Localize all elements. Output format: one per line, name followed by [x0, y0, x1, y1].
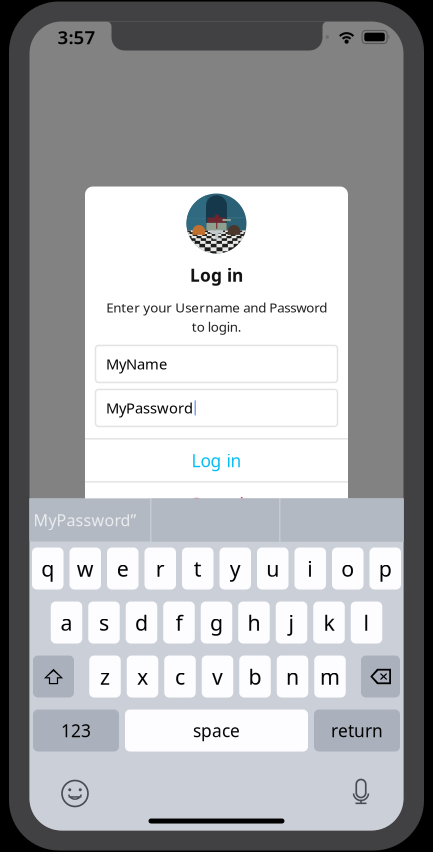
- staticText: x: [137, 662, 148, 691]
- staticText: o: [341, 554, 354, 583]
- staticText: return: [331, 719, 383, 742]
- staticText: Cancel: [189, 492, 243, 515]
- button[interactable]: c: [164, 655, 196, 697]
- button[interactable]: q: [32, 547, 63, 589]
- button[interactable]: r: [144, 547, 176, 589]
- button[interactable]: space: [125, 709, 308, 751]
- staticText: 3:57: [57, 25, 95, 49]
- staticText: y: [230, 554, 241, 583]
- staticText: Enter your Username and Password to logi…: [106, 298, 327, 335]
- button[interactable]: return: [314, 709, 400, 751]
- staticText: l: [363, 608, 369, 637]
- staticText: m: [320, 662, 340, 691]
- staticText: q: [41, 554, 54, 583]
- button[interactable]: o: [332, 547, 363, 589]
- button[interactable]: p: [369, 547, 401, 589]
- staticText: Log in: [190, 263, 243, 286]
- staticText: r: [156, 554, 165, 583]
- button[interactable]: s: [88, 601, 120, 643]
- button[interactable]: u: [257, 547, 288, 589]
- button[interactable]: Dictation: [349, 779, 373, 807]
- staticText: 123: [61, 719, 91, 742]
- button[interactable]: n: [277, 655, 308, 697]
- staticText: e: [117, 554, 129, 583]
- staticText: n: [286, 662, 299, 691]
- staticText: b: [248, 662, 261, 691]
- button[interactable]: i: [294, 547, 326, 589]
- staticText: w: [77, 554, 94, 583]
- button[interactable]: l: [351, 601, 382, 643]
- button[interactable]: k: [313, 601, 345, 643]
- staticText: h: [247, 608, 260, 637]
- staticText: f: [175, 608, 182, 637]
- button[interactable]: Cancel: [85, 482, 348, 525]
- button[interactable]: v: [202, 655, 233, 697]
- button[interactable]: Log in: [85, 439, 348, 481]
- button[interactable]: t: [182, 547, 213, 589]
- button[interactable]: w: [69, 547, 101, 589]
- button[interactable]: y: [219, 547, 251, 589]
- button[interactable]: a: [51, 601, 82, 643]
- staticText: g: [210, 608, 223, 637]
- button[interactable]: Shift: [33, 655, 74, 697]
- button[interactable]: Delete: [361, 655, 400, 697]
- staticText: z: [100, 662, 110, 691]
- staticText: i: [307, 554, 313, 583]
- staticText: Log in: [191, 449, 241, 472]
- staticText: k: [323, 608, 334, 637]
- staticText: MyName: [106, 354, 167, 374]
- button[interactable]: j: [276, 601, 307, 643]
- staticText: j: [288, 608, 294, 637]
- staticText: MyPassword: [106, 398, 193, 418]
- button[interactable]: z: [89, 655, 121, 697]
- staticText: v: [212, 662, 223, 691]
- button[interactable]: x: [127, 655, 158, 697]
- button[interactable]: Emoji keyboard: [60, 778, 90, 808]
- staticText: space: [193, 719, 240, 742]
- button[interactable]: h: [238, 601, 270, 643]
- button[interactable]: d: [126, 601, 157, 643]
- staticText: s: [99, 608, 109, 637]
- staticText: d: [135, 608, 148, 637]
- button[interactable]: m: [314, 655, 346, 697]
- button[interactable]: MyPassword”: [29, 498, 150, 541]
- button[interactable]: b: [239, 655, 271, 697]
- staticText: MyPassword”: [33, 509, 136, 531]
- staticText: c: [175, 662, 185, 691]
- staticText: a: [60, 608, 72, 637]
- staticText: p: [379, 554, 392, 583]
- staticText: u: [266, 554, 279, 583]
- button[interactable]: g: [201, 601, 232, 643]
- button[interactable]: f: [163, 601, 195, 643]
- button[interactable]: 123: [33, 709, 119, 751]
- staticText: t: [194, 554, 202, 583]
- button[interactable]: e: [107, 547, 138, 589]
